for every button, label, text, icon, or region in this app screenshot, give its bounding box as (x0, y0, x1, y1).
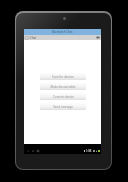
staticText: Send message (53, 105, 73, 109)
button[interactable]: App icon (25, 36, 29, 40)
button[interactable]: Connect device (40, 93, 86, 100)
button[interactable]: Back (27, 150, 29, 152)
staticText: Make discoverable (50, 85, 76, 89)
staticText: 1:08 (86, 149, 92, 153)
staticText: Bluetooth Chat (52, 30, 73, 34)
staticText: Connect device (53, 95, 74, 99)
button[interactable]: Send message (40, 103, 86, 110)
staticText: Scan for devices (52, 75, 74, 79)
button[interactable]: Scan for devices (40, 73, 86, 80)
staticText: Chat (30, 36, 37, 40)
button[interactable]: Home (32, 150, 34, 152)
button[interactable]: More options (96, 36, 100, 39)
button[interactable]: Make discoverable (40, 83, 86, 90)
